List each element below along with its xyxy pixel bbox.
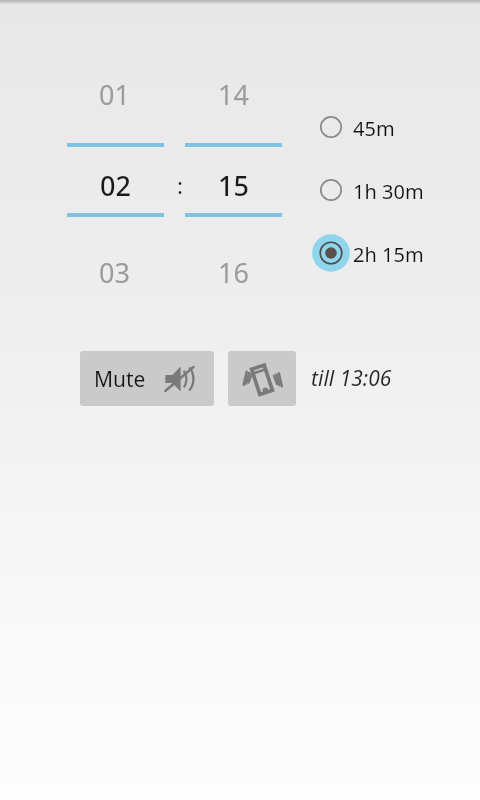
button[interactable]: 15 — [178, 162, 288, 208]
button[interactable]: 1h 30m — [308, 166, 473, 214]
staticText: 15 — [218, 167, 249, 204]
button[interactable]: 16 — [178, 249, 288, 295]
staticText: 01 — [99, 76, 130, 113]
button[interactable]: 01 — [59, 71, 169, 117]
staticText: 2h 15m — [353, 241, 424, 268]
staticText: : — [177, 170, 183, 200]
staticText: 16 — [218, 254, 249, 291]
staticText: 14 — [218, 76, 249, 113]
staticText: 45m — [353, 115, 395, 142]
button[interactable]: 45m — [308, 103, 473, 151]
staticText: till 13:06 — [311, 364, 392, 393]
button[interactable]: 02 — [60, 162, 170, 208]
button[interactable]: 14 — [178, 71, 288, 117]
button[interactable]: 2h 15m — [308, 229, 473, 277]
staticText: 1h 30m — [353, 178, 424, 205]
button[interactable]: Mute — [80, 351, 214, 406]
button[interactable]: 03 — [59, 249, 169, 295]
staticText: 03 — [99, 254, 130, 291]
button[interactable]: Vibrate — [228, 351, 296, 406]
staticText: Mute — [94, 365, 146, 394]
staticText: 02 — [100, 167, 131, 204]
